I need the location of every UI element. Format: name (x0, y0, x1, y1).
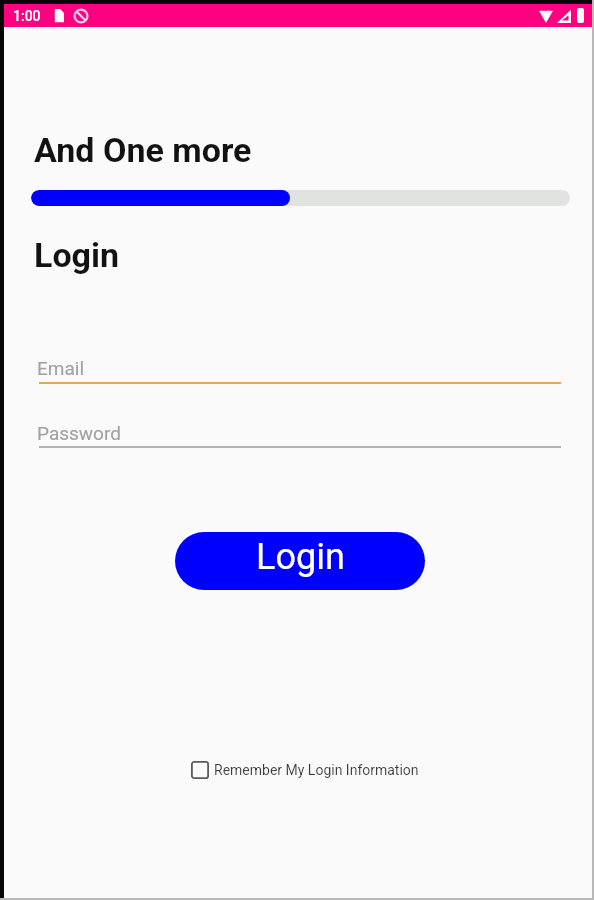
button[interactable]: Remember My Login Information checkbox (191, 761, 419, 779)
staticText: Remember My Login Information (214, 762, 419, 778)
button[interactable]: Password (39, 421, 561, 448)
staticText: Password (37, 422, 121, 444)
button[interactable]: Login (175, 532, 425, 590)
staticText: Login (256, 536, 345, 578)
staticText: Login (34, 235, 120, 275)
button[interactable]: Email (39, 356, 561, 383)
staticText: 1:00 (13, 8, 41, 24)
staticText: And One more (34, 130, 252, 170)
staticText: Email (37, 357, 85, 379)
